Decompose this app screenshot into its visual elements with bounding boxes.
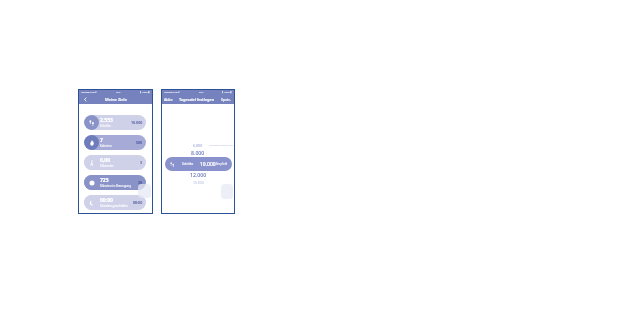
staticText: 30 [138,180,143,185]
staticText: 500 [136,140,143,145]
staticText: Empfohlen [216,162,228,166]
button[interactable]: 7 [84,135,146,150]
staticText: ▮ 100% ▮ [140,91,150,94]
staticText: 6.000 [193,143,203,148]
button[interactable]: 0,00 [84,155,146,170]
staticText: 9:41 [199,91,204,94]
staticText: 12.000 [190,171,207,178]
staticText: 00:00 [100,197,113,204]
staticText: 9:41 [116,91,121,94]
staticText: Vodafone.de ▾ [81,91,97,94]
staticText: Meine Ziele [105,97,127,102]
button[interactable]: 725 [84,175,146,190]
button[interactable]: Speic. [221,97,232,102]
staticText: 7 [100,137,103,144]
staticText: Tagesziel festlegen [179,97,215,102]
staticText: 8.000 [191,149,205,156]
button[interactable]: Schritte [165,157,232,171]
staticText: Kalorien [100,144,112,148]
staticText: 2.553 [100,117,113,124]
staticText: 3 [140,160,143,165]
staticText: ▮ 100% ▮ [222,91,232,94]
staticText: Stunden geschlafen [100,204,128,208]
staticText: 10.000 [131,120,143,125]
button[interactable]: Abbr. [164,97,173,102]
staticText: Kilometer [100,164,114,168]
staticText: Schritte [182,162,194,166]
staticText: Vodafone.de ▾ [164,91,180,94]
staticText: 0,00 [100,157,111,164]
staticText: 08:00 [133,200,143,205]
button[interactable]: 2.553 [84,115,146,130]
staticText: 15.000 [193,180,204,185]
button[interactable]: Back [82,96,89,103]
staticText: Schritte [100,124,111,128]
staticText: 725 [100,177,109,184]
button[interactable]: 00:00 [84,195,146,210]
staticText: 10.000 [200,161,216,168]
staticText: Wir geben einen Tipp [209,143,233,146]
staticText: Minuten in Bewegung [100,184,132,188]
